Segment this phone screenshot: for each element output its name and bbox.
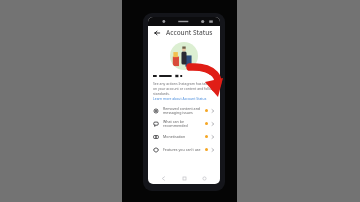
staticText: Features you can't use bbox=[163, 147, 203, 152]
staticText: Account Status bbox=[166, 28, 213, 37]
button[interactable]: Recents bbox=[200, 174, 209, 183]
staticText: What can be recommended bbox=[163, 119, 203, 129]
staticText: Learn more about Account Status bbox=[153, 96, 207, 101]
staticText: Monetisation bbox=[163, 134, 203, 139]
button[interactable]: Monetisation bbox=[148, 130, 220, 143]
button[interactable]: Removed content and messaging issues bbox=[148, 104, 220, 117]
button[interactable]: Features you can't use bbox=[148, 143, 220, 156]
button[interactable]: Home bbox=[180, 174, 189, 183]
staticText: See any actions Instagram has taken on y… bbox=[153, 81, 215, 96]
button[interactable]: What can be recommended bbox=[148, 117, 220, 130]
staticText: Removed content and messaging issues bbox=[163, 106, 203, 116]
button[interactable]: Back bbox=[159, 174, 168, 183]
button[interactable]: Back bbox=[152, 28, 161, 37]
